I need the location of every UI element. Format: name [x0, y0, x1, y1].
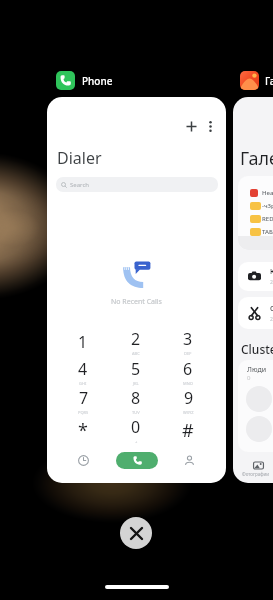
button[interactable]: *: [62, 416, 104, 444]
staticText: Галерея: [240, 146, 273, 171]
button[interactable]: Phone: [56, 71, 113, 90]
staticText: 3: [183, 328, 193, 350]
staticText: Камера: [270, 267, 273, 277]
staticText: 8: [131, 387, 141, 409]
staticText: Скриншоты: [270, 304, 273, 314]
staticText: 7: [79, 387, 89, 409]
staticText: 4: [78, 358, 88, 380]
staticText: JKL: [133, 381, 139, 386]
button[interactable]: 4: [62, 358, 104, 386]
button[interactable]: 6: [167, 358, 209, 386]
staticText: 9: [184, 387, 194, 409]
button[interactable]: Photos: [246, 453, 270, 477]
staticText: ABC: [132, 351, 140, 356]
staticText: PQRS: [78, 410, 89, 415]
button[interactable]: Галерея: [233, 97, 273, 483]
staticText: DEF: [184, 351, 192, 356]
staticText: #: [182, 418, 194, 443]
button[interactable]: Call: [116, 452, 158, 469]
button[interactable]: Add contact: [47, 97, 226, 483]
button[interactable]: Камера: [238, 262, 273, 291]
button[interactable]: Recents: [71, 448, 95, 472]
button[interactable]: 0: [115, 416, 157, 444]
staticText: TUV: [132, 410, 140, 415]
button[interactable]: 9: [167, 387, 209, 415]
staticText: RED-сбор: [262, 215, 273, 223]
button[interactable]: Close all: [120, 517, 152, 549]
button[interactable]: More options: [198, 114, 222, 138]
staticText: Галерея: [265, 74, 273, 88]
button[interactable]: Add contact: [179, 114, 203, 138]
staticText: 2: [131, 328, 141, 350]
button[interactable]: Скриншоты: [238, 297, 273, 329]
button[interactable]: 5: [115, 358, 157, 386]
button[interactable]: Галерея: [240, 71, 273, 90]
button[interactable]: 1: [62, 328, 104, 356]
staticText: Search: [70, 181, 89, 189]
staticText: Phone: [82, 74, 113, 88]
staticText: -ч3р мой: [262, 202, 273, 210]
staticText: 25 элементов: [270, 316, 273, 323]
staticText: Header.pdf: [262, 189, 273, 197]
staticText: ТАБЛИЦА: [262, 228, 273, 236]
button[interactable]: 2: [115, 328, 157, 356]
staticText: Cluster: [241, 341, 273, 357]
button[interactable]: 3: [167, 328, 209, 356]
button[interactable]: #: [167, 416, 209, 444]
staticText: WXYZ: [183, 410, 194, 415]
staticText: Фотографии: [242, 471, 270, 477]
staticText: 0: [131, 416, 141, 438]
staticText: GHI: [79, 381, 87, 386]
staticText: Люди: [247, 365, 267, 375]
staticText: 6: [183, 358, 193, 380]
staticText: 5: [131, 358, 141, 380]
staticText: 1: [78, 331, 88, 353]
button[interactable]: Contacts: [177, 448, 201, 472]
staticText: 0: [247, 374, 251, 382]
button[interactable]: Люди: [238, 360, 273, 452]
button[interactable]: 7: [62, 387, 104, 415]
staticText: *: [78, 418, 88, 443]
button[interactable]: Search: [56, 177, 218, 192]
staticText: MNO: [183, 381, 193, 386]
staticText: Dialer: [57, 147, 102, 169]
staticText: +: [135, 439, 138, 444]
staticText: No Recent Calls: [111, 297, 162, 307]
button[interactable]: 8: [115, 387, 157, 415]
staticText: 24 элемента: [270, 279, 273, 286]
